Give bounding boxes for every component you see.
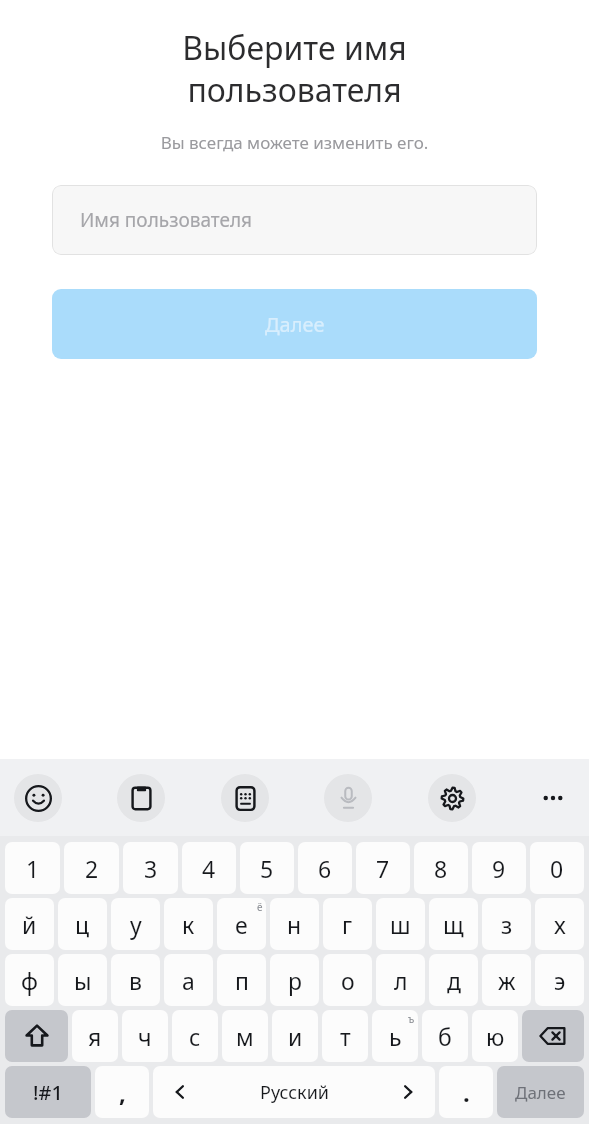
button[interactable]: 5 (240, 842, 294, 894)
button[interactable]: Далее (497, 1066, 584, 1118)
button[interactable]: Backspace (522, 1010, 584, 1062)
staticText: я (88, 1021, 102, 1052)
button[interactable]: л (376, 954, 425, 1006)
button[interactable]: д (429, 954, 478, 1006)
button[interactable]: ч (122, 1010, 168, 1062)
staticText: б (438, 1021, 452, 1052)
staticText: 5 (260, 853, 274, 884)
staticText: и (288, 1021, 303, 1052)
button[interactable]: 1 (5, 842, 60, 894)
button[interactable]: 6 (298, 842, 352, 894)
staticText: ч (138, 1021, 152, 1052)
button[interactable]: ы (58, 954, 107, 1006)
staticText: 2 (85, 853, 99, 884)
button[interactable]: Space, Русский (153, 1066, 435, 1118)
staticText: ц (75, 909, 90, 940)
button[interactable]: н (270, 898, 319, 950)
button[interactable]: !#1 (5, 1066, 91, 1118)
button[interactable]: б (422, 1010, 468, 1062)
staticText: 7 (376, 853, 390, 884)
button[interactable]: ю (472, 1010, 518, 1062)
button[interactable]: с (172, 1010, 218, 1062)
staticText: п (235, 965, 249, 996)
button[interactable]: ь (372, 1010, 418, 1062)
staticText: 0 (550, 853, 564, 884)
button[interactable]: 0 (530, 842, 584, 894)
staticText: ю (486, 1021, 505, 1052)
button[interactable]: з (482, 898, 531, 950)
button[interactable]: й (5, 898, 54, 950)
staticText: Выберите имя пользователя (24, 26, 565, 111)
button[interactable]: 3 (123, 842, 178, 894)
staticText: 3 (144, 853, 158, 884)
staticText: з (501, 909, 513, 940)
staticText: Русский (260, 1080, 329, 1105)
button[interactable]: 9 (472, 842, 526, 894)
staticText: . (463, 1076, 470, 1109)
staticText: щ (443, 909, 464, 940)
staticText: Имя пользователя (80, 207, 253, 233)
button[interactable]: о (323, 954, 372, 1006)
button[interactable]: и (272, 1010, 318, 1062)
button[interactable]: ц (58, 898, 107, 950)
staticText: а (182, 965, 195, 996)
button[interactable]: ф (5, 954, 54, 1006)
button[interactable]: Shift (5, 1010, 68, 1062)
staticText: ы (74, 965, 92, 996)
button[interactable]: ж (482, 954, 531, 1006)
button[interactable]: я (72, 1010, 118, 1062)
button[interactable]: 2 (64, 842, 119, 894)
staticText: , (119, 1076, 126, 1109)
button[interactable]: . (439, 1066, 493, 1118)
staticText: г (342, 909, 353, 940)
button[interactable]: у (111, 898, 160, 950)
button[interactable]: х (535, 898, 584, 950)
staticText: ш (390, 909, 411, 940)
staticText: л (394, 965, 408, 996)
staticText: ж (498, 965, 516, 996)
button[interactable]: г (323, 898, 372, 950)
staticText: р (288, 965, 302, 996)
button[interactable]: м (222, 1010, 268, 1062)
staticText: Далее (265, 311, 325, 338)
button[interactable]: в (111, 954, 160, 1006)
button[interactable]: Clipboard (117, 774, 165, 822)
button[interactable]: Имя пользователя (52, 185, 537, 255)
button[interactable]: п (217, 954, 266, 1006)
staticText: ъ (408, 1012, 415, 1026)
staticText: ь (389, 1021, 402, 1052)
button[interactable]: 4 (182, 842, 236, 894)
button[interactable]: э (535, 954, 584, 1006)
staticText: й (22, 909, 37, 940)
button[interactable]: 8 (414, 842, 468, 894)
button[interactable]: к (164, 898, 213, 950)
staticText: е (235, 909, 248, 940)
staticText: н (287, 909, 302, 940)
button[interactable]: е (217, 898, 266, 950)
button[interactable]: More options (531, 776, 575, 820)
button[interactable]: 7 (356, 842, 410, 894)
staticText: ё (257, 900, 263, 914)
button[interactable]: Voice input (324, 774, 372, 822)
staticText: х (554, 909, 566, 940)
staticText: э (554, 965, 566, 996)
staticText: 8 (434, 853, 448, 884)
button[interactable]: Далее (52, 289, 537, 359)
staticText: Вы всегда можете изменить его. (24, 131, 565, 154)
button[interactable]: , (95, 1066, 149, 1118)
staticText: Далее (515, 1081, 566, 1104)
staticText: с (189, 1021, 201, 1052)
button[interactable]: щ (429, 898, 478, 950)
button[interactable]: Settings (428, 774, 476, 822)
button[interactable]: Emoji (14, 774, 62, 822)
button[interactable]: ш (376, 898, 425, 950)
staticText: т (340, 1021, 351, 1052)
staticText: д (447, 965, 461, 996)
staticText: 4 (202, 853, 216, 884)
button[interactable]: т (322, 1010, 368, 1062)
staticText: у (130, 909, 142, 940)
staticText: ф (21, 965, 38, 996)
button[interactable]: р (270, 954, 319, 1006)
button[interactable]: а (164, 954, 213, 1006)
button[interactable]: Stickers (221, 774, 269, 822)
